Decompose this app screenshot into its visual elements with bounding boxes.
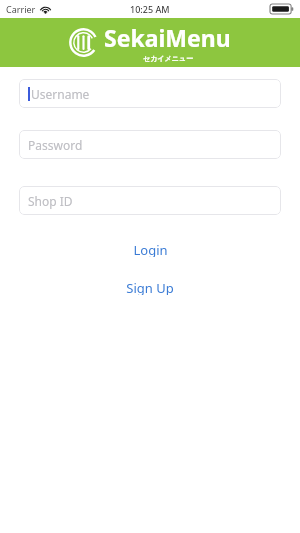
staticText: Carrier: [6, 3, 36, 15]
staticText: Login: [133, 241, 168, 257]
button[interactable]: Password: [19, 130, 281, 159]
staticText: セカイメニュー: [143, 54, 193, 63]
staticText: Shop ID: [28, 193, 73, 209]
staticText: Sign Up: [126, 279, 174, 295]
button[interactable]: Username: [19, 79, 281, 108]
button[interactable]: Shop ID: [19, 186, 281, 215]
button[interactable]: Sign Up: [0, 279, 300, 295]
staticText: 10:25 AM: [130, 3, 170, 15]
staticText: Password: [28, 137, 83, 153]
staticText: SekaiMenu: [104, 22, 231, 53]
button[interactable]: Login: [0, 241, 300, 257]
staticText: Username: [31, 86, 90, 102]
